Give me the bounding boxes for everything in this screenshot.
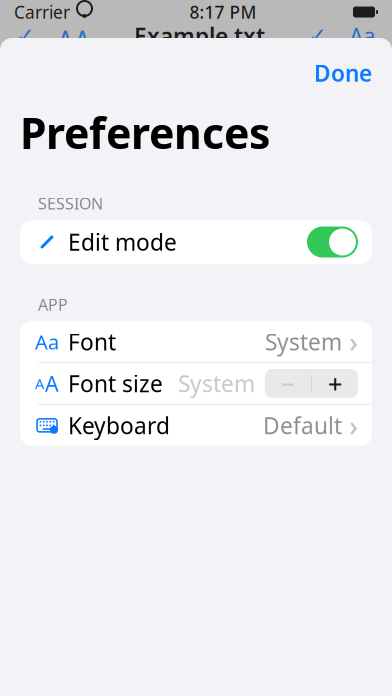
staticText: Font size xyxy=(68,368,163,399)
staticText: Example.txt xyxy=(134,21,265,51)
staticText: A xyxy=(45,369,59,398)
staticText: SESSION xyxy=(38,193,103,214)
button[interactable]: Increase font size xyxy=(312,369,358,398)
staticText: − xyxy=(280,367,295,400)
staticText: System xyxy=(265,327,342,357)
staticText: ✓ xyxy=(16,23,35,49)
staticText: Edit mode xyxy=(68,227,177,257)
staticText: ∧∧ xyxy=(57,23,91,49)
button[interactable]: Decrease font size xyxy=(265,369,311,398)
staticText: Aa xyxy=(35,328,59,355)
staticText: Default xyxy=(263,410,342,440)
button[interactable]: Edit mode xyxy=(20,220,372,264)
staticText: A xyxy=(35,374,44,393)
staticText: Aa xyxy=(349,21,376,51)
staticText: + xyxy=(328,367,342,400)
staticText: Preferences xyxy=(20,104,270,161)
staticText: Font xyxy=(68,327,116,357)
button[interactable]: Keyboard xyxy=(20,405,372,446)
staticText: Done xyxy=(314,58,372,88)
staticText: Keyboard xyxy=(68,410,170,440)
staticText: ✓ xyxy=(308,23,327,49)
staticText: System xyxy=(178,368,255,399)
staticText: APP xyxy=(38,294,68,315)
staticText: 8:17 PM xyxy=(189,0,256,23)
button[interactable]: Done xyxy=(308,52,378,94)
staticText: › xyxy=(349,407,358,444)
button[interactable]: Aa xyxy=(20,321,372,362)
staticText: › xyxy=(349,323,358,360)
staticText: Carrier xyxy=(14,0,70,23)
button[interactable]: Edit mode xyxy=(307,226,358,257)
